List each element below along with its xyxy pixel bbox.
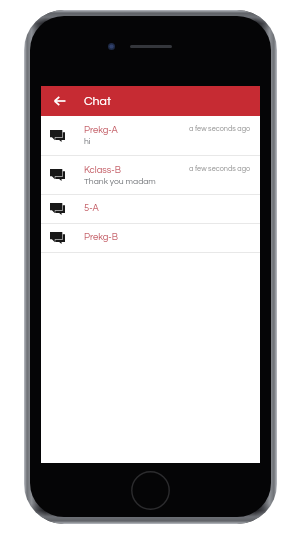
staticText: Prekg-A [84, 125, 118, 135]
button[interactable]: Prekg-B [41, 224, 260, 252]
staticText: Chat [84, 95, 111, 108]
staticText: a few seconds ago [189, 125, 251, 133]
button[interactable]: Prekg-A [41, 116, 260, 155]
staticText: Prekg-B [84, 232, 118, 242]
staticText: Kclass-B [84, 165, 121, 175]
staticText: a few seconds ago [189, 165, 251, 173]
staticText: hi [84, 137, 91, 146]
button[interactable]: Back [49, 90, 71, 112]
staticText: 5-A [84, 203, 99, 213]
button[interactable]: 5-A [41, 195, 260, 223]
button[interactable]: Kclass-B [41, 156, 260, 194]
staticText: Thank you madam [84, 177, 156, 186]
